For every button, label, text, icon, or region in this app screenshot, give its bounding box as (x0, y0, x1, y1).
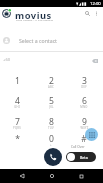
staticText: 5 (49, 95, 54, 107)
staticText: # (81, 133, 87, 145)
button[interactable]: * (0, 133, 34, 148)
button[interactable]: Call (44, 148, 62, 166)
button[interactable]: Work profile (2, 9, 11, 18)
staticText: ABC (48, 85, 54, 89)
button[interactable]: Home (45, 169, 59, 183)
button[interactable]: Back (15, 169, 29, 183)
button[interactable]: 6 (67, 95, 101, 110)
button[interactable]: 7 (0, 116, 34, 131)
staticText: Beta (80, 155, 88, 160)
staticText: 6 (82, 95, 87, 107)
staticText: + (50, 143, 52, 147)
staticText: Call Over (71, 145, 85, 149)
button[interactable]: 9 (67, 116, 101, 131)
staticText: 3 (82, 75, 87, 87)
staticText: 7 (15, 116, 20, 128)
staticText: 1 (15, 75, 20, 87)
button[interactable]: Search (82, 8, 92, 18)
button[interactable]: Backspace (88, 54, 102, 68)
staticText: GHI (14, 105, 20, 109)
staticText: * (15, 133, 20, 145)
button[interactable]: 2 (34, 75, 68, 90)
button[interactable]: Keypad options (85, 128, 98, 141)
staticText: 9 (82, 116, 87, 128)
staticText: MNO (80, 105, 88, 109)
button[interactable]: Select a contact (0, 31, 103, 50)
staticText: 12:00 (90, 1, 101, 7)
button[interactable]: # (67, 133, 101, 148)
staticText: Select a contact (19, 37, 57, 44)
button[interactable]: More options (91, 8, 101, 18)
staticText: 0 (49, 133, 54, 145)
staticText: +60 (3, 57, 11, 63)
button[interactable]: Recents (74, 169, 88, 183)
button[interactable]: 3 (67, 75, 101, 90)
staticText: PQRS (13, 126, 21, 130)
staticText: JKL (49, 105, 54, 109)
staticText: 4 (15, 95, 20, 107)
button[interactable]: 1 (0, 75, 34, 90)
staticText: Work Number : +1 678 7009478 (16, 18, 53, 21)
staticText: DEF (81, 85, 87, 89)
staticText: 2 (49, 75, 54, 87)
button[interactable]: Beta (66, 152, 96, 162)
staticText: movius (15, 9, 52, 22)
button[interactable]: 4 (0, 95, 34, 110)
button[interactable]: 0 (34, 133, 68, 148)
staticText: TUV (48, 126, 54, 130)
staticText: 8 (49, 116, 54, 128)
staticText: WXYZ (80, 126, 89, 130)
button[interactable]: 8 (34, 116, 68, 131)
button[interactable]: 5 (34, 95, 68, 110)
